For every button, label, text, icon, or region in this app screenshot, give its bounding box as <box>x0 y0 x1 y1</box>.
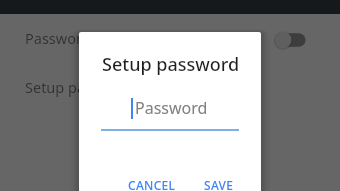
button[interactable]: Toggle password <box>268 25 312 55</box>
staticText: Password <box>25 28 91 48</box>
button[interactable]: Password <box>101 97 239 131</box>
staticText: Password <box>135 97 208 119</box>
button[interactable]: CANCEL <box>120 170 184 191</box>
staticText: Setup password <box>25 77 134 97</box>
staticText: CANCEL <box>128 177 176 191</box>
button[interactable]: SAVE <box>196 170 242 191</box>
staticText: Setup password <box>102 52 240 77</box>
button[interactable]: Password <box>0 13 340 62</box>
staticText: SAVE <box>204 177 234 191</box>
button[interactable]: Setup password <box>0 62 340 111</box>
